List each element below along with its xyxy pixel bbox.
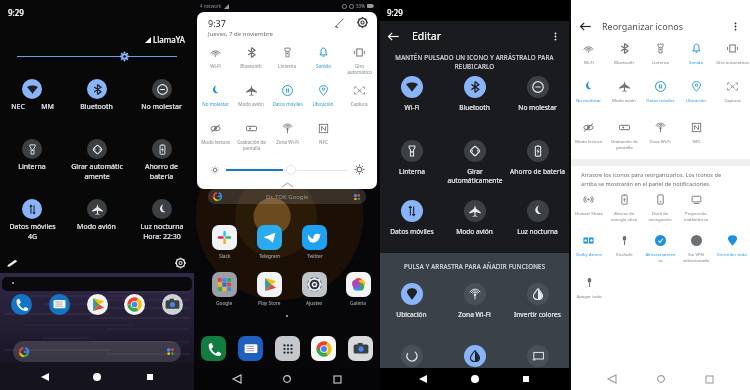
- button[interactable]: Bluetooth: [443, 76, 506, 112]
- button[interactable]: Datos móviles: [642, 81, 678, 103]
- button[interactable]: App: [275, 336, 300, 361]
- button[interactable]: Slack: [202, 225, 247, 260]
- button[interactable]: Girar automáticamente: [443, 140, 506, 185]
- button[interactable]: Dock de navegación: [642, 194, 678, 222]
- button[interactable]: Ajustes: [292, 272, 337, 307]
- button[interactable]: Editar: [334, 17, 345, 28]
- button[interactable]: Modo avión: [606, 81, 642, 103]
- button[interactable]: Grabación de pantalla: [233, 123, 269, 151]
- button[interactable]: App: [201, 336, 226, 361]
- button[interactable]: No molestar: [129, 79, 194, 112]
- button[interactable]: Modo lectura: [197, 123, 233, 145]
- button[interactable]: Giro automático: [714, 43, 750, 65]
- button[interactable]: Zona Wi-Fi: [269, 123, 305, 145]
- button[interactable]: Recientes: [330, 372, 344, 386]
- button[interactable]: Buscar: [208, 189, 366, 204]
- button[interactable]: Inicio: [467, 371, 483, 387]
- button[interactable]: Inicio: [280, 372, 294, 386]
- button[interactable]: Bluetooth: [64, 79, 129, 112]
- button[interactable]: No molestar: [571, 81, 606, 103]
- button[interactable]: Giro automático: [341, 47, 377, 75]
- button[interactable]: Wi-Fi: [197, 47, 233, 69]
- button[interactable]: Zona Wi-Fi: [443, 283, 506, 319]
- button[interactable]: Wi-Fi: [571, 43, 606, 65]
- button[interactable]: Recientes: [702, 372, 716, 386]
- button[interactable]: Sin VPN seleccionada: [678, 235, 714, 263]
- button[interactable]: Ahorro de batería: [129, 139, 194, 182]
- button[interactable]: Google: [202, 272, 247, 307]
- button[interactable]: Ubicación: [305, 85, 341, 107]
- button[interactable]: NEC MM: [0, 79, 64, 112]
- button[interactable]: Modo avión: [64, 199, 129, 232]
- button[interactable]: Luz nocturna: [506, 200, 569, 236]
- button[interactable]: Datos móviles 4G: [0, 199, 64, 242]
- button[interactable]: Ahorro de energía ultra: [606, 194, 642, 222]
- button[interactable]: Atrás: [579, 20, 592, 33]
- button[interactable]: App: [87, 294, 108, 315]
- button[interactable]: Datos móviles: [269, 85, 305, 107]
- button[interactable]: [380, 345, 443, 381]
- button[interactable]: Inicio: [654, 372, 668, 386]
- button[interactable]: Sonido: [678, 43, 714, 65]
- button[interactable]: Ajustes: [175, 259, 186, 267]
- button[interactable]: Telegram: [247, 225, 292, 260]
- button[interactable]: No molestar: [506, 76, 569, 112]
- button[interactable]: Galería: [337, 272, 380, 307]
- button[interactable]: App: [49, 294, 70, 315]
- button[interactable]: Invertir colores: [506, 283, 569, 319]
- button[interactable]: Atrás: [415, 371, 431, 387]
- button[interactable]: Ajustes: [357, 17, 368, 28]
- button[interactable]: NFC: [678, 122, 714, 144]
- button[interactable]: Linterna: [0, 139, 64, 172]
- button[interactable]: Más opciones: [730, 21, 741, 32]
- button[interactable]: Enchufe: [606, 235, 642, 257]
- button[interactable]: Atrás: [230, 372, 244, 386]
- button[interactable]: App: [238, 336, 263, 361]
- button[interactable]: App: [124, 294, 145, 315]
- button[interactable]: Recientes: [142, 369, 158, 385]
- button[interactable]: Modo avión: [443, 200, 506, 236]
- button[interactable]: Linterna: [642, 43, 678, 65]
- button[interactable]: Linterna: [269, 47, 305, 69]
- button[interactable]: Editar: [7, 259, 18, 267]
- button[interactable]: Ubicación: [678, 81, 714, 103]
- button[interactable]: Ubicación: [380, 283, 443, 319]
- button[interactable]: Modo avión: [233, 85, 269, 107]
- button[interactable]: Play Store: [247, 272, 292, 307]
- button[interactable]: Modo lectura: [571, 122, 606, 144]
- button[interactable]: Grabación de pantalla: [606, 122, 642, 150]
- button[interactable]: Almacenamien to: [642, 235, 678, 263]
- button[interactable]: Wi-Fi: [380, 76, 443, 112]
- button[interactable]: Buscar: [13, 341, 181, 362]
- button[interactable]: Huawei Share: [571, 194, 606, 216]
- button[interactable]: Encender todo: [714, 235, 750, 257]
- button[interactable]: App: [11, 294, 32, 315]
- button[interactable]: Twitter: [292, 225, 337, 260]
- button[interactable]: Atrás: [387, 30, 400, 43]
- button[interactable]: Captura: [341, 85, 377, 107]
- button[interactable]: App: [162, 294, 183, 315]
- button[interactable]: NFC: [305, 123, 341, 145]
- button[interactable]: No molestar: [197, 85, 233, 107]
- button[interactable]: App: [311, 336, 336, 361]
- button[interactable]: Inicio: [89, 369, 105, 385]
- button[interactable]: Dolby Atmos: [571, 235, 606, 257]
- button[interactable]: Proyección inalámbrica: [678, 194, 714, 222]
- button[interactable]: Luz nocturna Hora: 22:30: [129, 199, 194, 242]
- button[interactable]: Zona Wi-Fi: [642, 122, 678, 144]
- button[interactable]: Recientes: [518, 371, 534, 387]
- button[interactable]: Girar automátic amente: [64, 139, 129, 182]
- button[interactable]: Atrás: [37, 369, 53, 385]
- button[interactable]: [443, 345, 506, 381]
- button[interactable]: Sonido: [305, 47, 341, 69]
- button[interactable]: Apagar todo: [571, 277, 607, 299]
- button[interactable]: Ahorro de batería: [506, 140, 569, 176]
- button[interactable]: App: [348, 336, 373, 361]
- button[interactable]: Datos móviles: [380, 200, 443, 236]
- button[interactable]: Bluetooth: [233, 47, 269, 69]
- button[interactable]: Atrás: [605, 372, 619, 386]
- button[interactable]: Más opciones: [550, 31, 561, 42]
- button[interactable]: Bluetooth: [606, 43, 642, 65]
- button[interactable]: Captura: [714, 81, 750, 103]
- button[interactable]: Linterna: [380, 140, 443, 176]
